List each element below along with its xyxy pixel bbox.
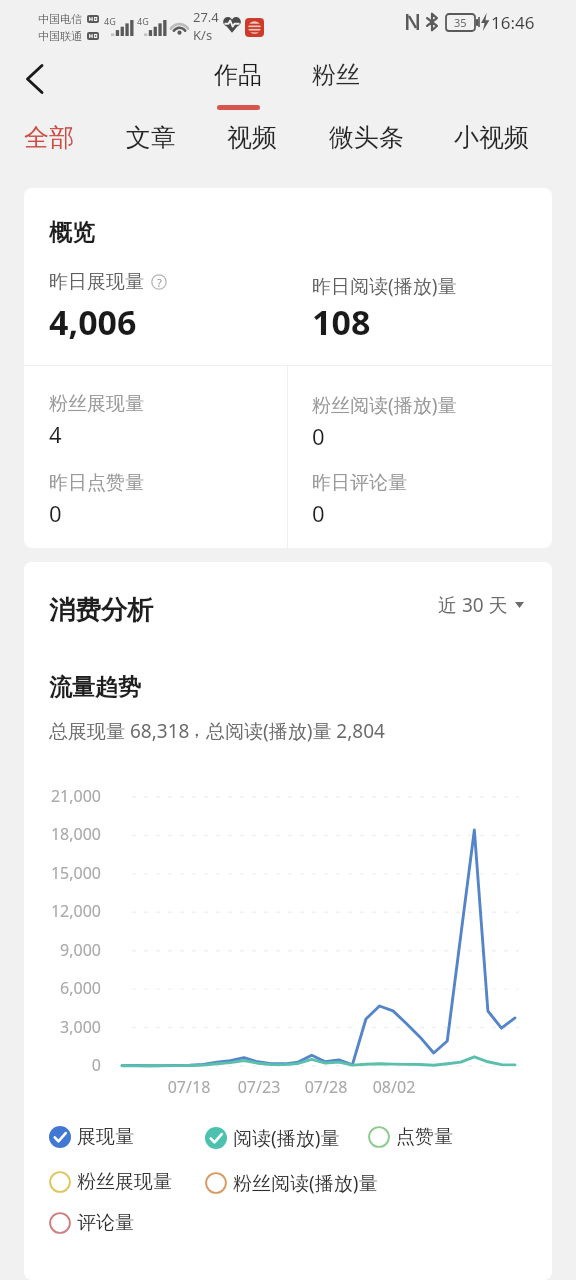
staticText: 0 [312, 498, 325, 528]
staticText: 07/23 [219, 1076, 299, 1098]
staticText: 点赞量 [396, 1125, 453, 1149]
button[interactable]: Back [12, 57, 56, 101]
button[interactable]: 微头条 [323, 114, 410, 161]
button[interactable]: 评论量 [49, 1211, 134, 1235]
staticText: 4 [49, 419, 62, 449]
staticText: 粉丝展现量 [49, 392, 144, 416]
staticText: 0 [49, 498, 62, 528]
staticText: 昨日展现量 [49, 270, 144, 294]
staticText: 08/02 [354, 1076, 434, 1098]
staticText: 108 [312, 299, 371, 345]
button[interactable]: 文章 [120, 114, 182, 161]
staticText: 全部 [24, 122, 74, 153]
staticText: 4G [104, 15, 116, 27]
button[interactable]: 粉丝展现量 [49, 1170, 172, 1194]
staticText: 0 [312, 421, 325, 451]
staticText: 粉丝阅读(播放)量 [312, 392, 457, 418]
staticText: 总阅读(播放)量 2,804 [206, 718, 385, 744]
staticText: 07/18 [149, 1076, 229, 1098]
button[interactable]: 近 30 天 [438, 590, 524, 620]
button[interactable]: 作品 [206, 60, 270, 110]
staticText: K/s [193, 26, 213, 44]
staticText: 16:46 [491, 11, 535, 34]
staticText: 27.4 [193, 8, 219, 26]
staticText: 15,000 [24, 862, 101, 884]
staticText: 文章 [126, 122, 176, 153]
staticText: 昨日点赞量 [49, 471, 144, 495]
staticText: 视频 [227, 122, 277, 153]
button[interactable]: 粉丝 [304, 60, 368, 90]
staticText: 粉丝阅读(播放)量 [233, 1170, 378, 1196]
staticText: 07/28 [286, 1076, 366, 1098]
staticText: 21,000 [24, 785, 101, 807]
staticText: 18,000 [24, 823, 101, 845]
button[interactable]: 点赞量 [368, 1125, 453, 1149]
button[interactable]: 粉丝阅读(播放)量 [205, 1170, 378, 1196]
staticText: 粉丝展现量 [77, 1170, 172, 1194]
staticText: 中国电信 [38, 12, 82, 26]
button[interactable]: 展现量 [49, 1125, 134, 1149]
button[interactable]: 全部 [18, 114, 80, 161]
staticText: 昨日阅读(播放)量 [312, 273, 457, 299]
staticText: 小视频 [454, 122, 529, 153]
staticText: 昨日评论量 [312, 471, 407, 495]
staticText: 阅读(播放)量 [233, 1125, 340, 1151]
staticText: 12,000 [24, 900, 101, 922]
staticText: ? [157, 275, 162, 290]
staticText: 0 [24, 1054, 101, 1076]
staticText: 9,000 [24, 939, 101, 961]
staticText: 3,000 [24, 1016, 101, 1038]
staticText: 消费分析 [49, 594, 153, 627]
button[interactable]: 阅读(播放)量 [205, 1125, 340, 1151]
staticText: 4,006 [49, 299, 137, 345]
staticText: 微头条 [329, 122, 404, 153]
staticText: 评论量 [77, 1211, 134, 1235]
staticText: 4G [137, 15, 149, 27]
staticText: 35 [454, 15, 467, 30]
staticText: 概览 [49, 218, 95, 247]
button[interactable]: 视频 [221, 114, 283, 161]
staticText: ， [187, 718, 206, 742]
button[interactable]: 小视频 [448, 114, 535, 161]
staticText: 作品 [214, 60, 262, 90]
staticText: 近 30 天 [438, 592, 508, 618]
staticText: 总展现量 68,318 [49, 718, 190, 744]
staticText: 粉丝 [312, 60, 360, 90]
staticText: 流量趋势 [49, 673, 141, 702]
staticText: 中国联通 [38, 29, 82, 43]
staticText: 展现量 [77, 1125, 134, 1149]
staticText: 6,000 [24, 977, 101, 999]
